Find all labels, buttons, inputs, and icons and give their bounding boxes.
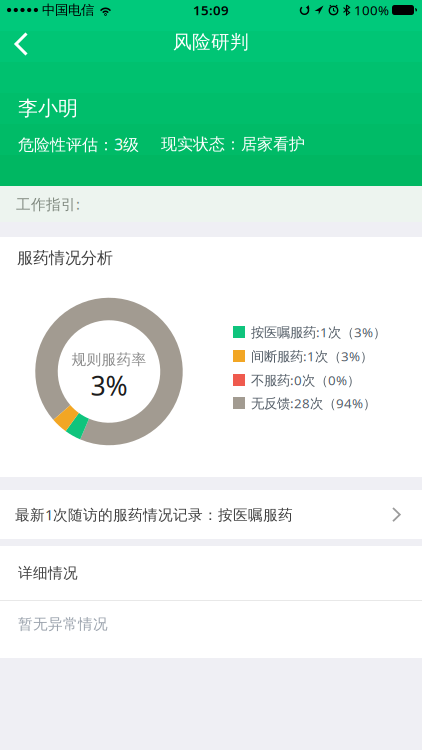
staticText: 现实状态：居家看护 — [161, 134, 305, 154]
staticText: 按医嘱服药:1次（3%） — [251, 323, 386, 341]
staticText: 详细情况 — [18, 564, 78, 582]
staticText: 100% — [354, 1, 389, 19]
staticText: 服药情况分析 — [17, 248, 113, 268]
staticText: 危险性评估：3级 — [18, 134, 139, 155]
staticText: 最新1次随访的服药情况记录：按医嘱服药 — [15, 505, 293, 524]
staticText: 间断服药:1次（3%） — [251, 347, 373, 365]
button[interactable]: Back — [0, 25, 44, 58]
staticText: 工作指引: — [16, 194, 80, 214]
staticText: 中国电信 — [42, 2, 94, 18]
staticText: 不服药:0次（0%） — [251, 371, 360, 389]
staticText: 无反馈:28次（94%） — [251, 394, 376, 412]
staticText: 李小明 — [18, 96, 78, 121]
staticText: 规则服药率 — [71, 350, 146, 368]
button[interactable]: 最新1次随访的服药情况记录：按医嘱服药 — [0, 490, 422, 539]
staticText: 暂无异常情况 — [18, 615, 108, 633]
staticText: 3% — [90, 368, 127, 403]
staticText: 15:09 — [193, 1, 229, 19]
staticText: 风险研判 — [173, 30, 249, 53]
button[interactable]: 工作指引: — [0, 186, 422, 222]
